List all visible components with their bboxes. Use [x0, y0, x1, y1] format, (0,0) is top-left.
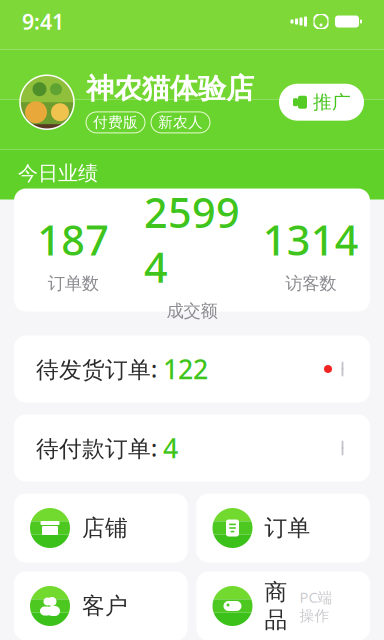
staticText: 187 — [37, 212, 109, 267]
button[interactable]: 推广 — [279, 84, 364, 121]
button[interactable]: 客户 — [14, 571, 187, 640]
staticText: 店铺 — [82, 514, 128, 542]
button[interactable]: 商品 — [196, 571, 370, 640]
staticText: 4 — [163, 430, 178, 466]
staticText: PC端操作 — [299, 587, 332, 625]
button[interactable]: 待发货订单: — [14, 335, 370, 402]
button[interactable]: 店铺 — [14, 493, 187, 562]
staticText: 25994 — [144, 184, 240, 294]
staticText: 待发货订单: — [36, 354, 157, 384]
staticText: 待付款订单: — [36, 433, 157, 463]
staticText: 推广 — [313, 91, 351, 114]
staticText: 9:41 — [22, 7, 64, 36]
staticText: 订单 — [264, 514, 310, 542]
staticText: 新农人 — [158, 113, 203, 131]
staticText: 122 — [163, 351, 208, 387]
staticText: 订单数 — [48, 273, 99, 294]
staticText: 成交额 — [166, 300, 217, 321]
staticText: 访客数 — [285, 273, 336, 294]
button[interactable]: 订单 — [196, 493, 370, 562]
staticText: 付费版 — [93, 113, 138, 131]
button[interactable]: 待付款订单: — [14, 414, 370, 481]
staticText: 今日业绩 — [18, 161, 98, 185]
staticText: 1314 — [263, 212, 359, 267]
staticText: 商品 — [264, 578, 287, 634]
staticText: 客户 — [82, 592, 128, 620]
staticText: 神农猫体验店 — [86, 71, 254, 106]
